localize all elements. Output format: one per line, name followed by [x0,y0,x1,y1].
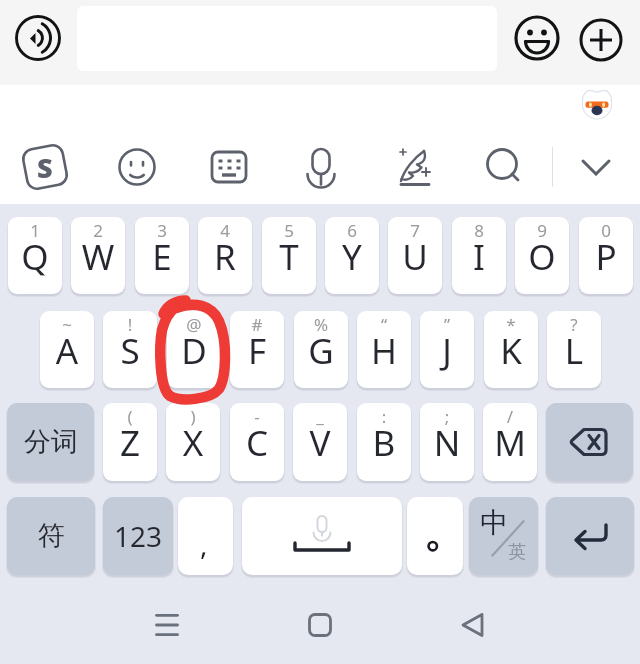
button[interactable]: Add [576,15,626,65]
button[interactable]: ? [547,311,601,388]
staticText: ~ [40,313,94,336]
staticText: 7 [388,219,442,242]
button[interactable]: Hide keyboard [567,138,625,196]
staticText: G [294,327,348,375]
staticText: : [357,405,411,428]
button[interactable]: 0 [579,217,633,294]
staticText: ? [547,313,601,336]
button[interactable]: Home [280,585,360,664]
staticText: B [357,419,411,467]
button[interactable]: Handwriting [384,138,442,196]
button[interactable]: ( [103,403,157,481]
staticText: * [484,313,538,336]
staticText: S [103,327,157,375]
staticText: ; [420,405,474,428]
staticText: H [357,327,411,375]
staticText: P [579,233,633,281]
staticText: R [198,233,252,281]
staticText: 8 [452,219,506,242]
staticText: T [262,233,316,281]
button[interactable]: Voice [292,138,350,196]
staticText: Q [8,233,62,281]
button[interactable]: 123 [103,497,173,575]
staticText: L [547,327,601,375]
button[interactable]: ) [166,403,220,481]
staticText: 9 [515,219,569,242]
button[interactable]: * [484,311,538,388]
staticText: C [230,419,284,467]
staticText: , [200,525,208,563]
button[interactable]: Emoji [512,13,562,63]
button[interactable]: : [357,403,411,481]
button[interactable]: 9 [515,217,569,294]
button[interactable]: 1 [8,217,62,294]
button[interactable]: Comma [178,497,233,575]
staticText: # [230,313,284,336]
button[interactable]: 4 [198,217,252,294]
staticText: 3 [135,219,189,242]
staticText: W [71,233,125,281]
button[interactable]: 2 [71,217,125,294]
staticText: D [167,327,221,375]
button[interactable]: Keyboard layout [200,138,258,196]
staticText: 2 [71,219,125,242]
button[interactable]: ” [420,311,474,388]
button[interactable]: ! [103,311,157,388]
staticText: I [452,233,506,281]
button[interactable]: Period [407,497,463,575]
staticText: 5 [262,219,316,242]
button[interactable]: # [230,311,284,388]
staticText: ” [420,313,474,336]
button[interactable]: Voice input [12,12,64,64]
button[interactable]: Chinese English toggle [469,497,538,575]
button[interactable]: ~ [40,311,94,388]
staticText: 英 [508,541,526,564]
button[interactable]: 符 [7,497,95,575]
button[interactable]: % [294,311,348,388]
button[interactable]: ; [420,403,474,481]
staticText: ! [103,313,157,336]
staticText: - [230,405,284,428]
staticText: 0 [579,219,633,242]
staticText: M [483,419,537,467]
button[interactable]: Space [242,497,402,575]
button[interactable]: / [483,403,537,481]
staticText: O [515,233,569,281]
staticText: 123 [114,517,163,555]
button[interactable]: - [230,403,284,481]
button[interactable]: 8 [452,217,506,294]
staticText: F [230,327,284,375]
staticText: ( [103,405,157,428]
staticText: V [293,419,347,467]
staticText: 分词 [24,425,78,459]
staticText: E [135,233,189,281]
button[interactable]: @ [167,311,221,388]
staticText: J [420,327,474,375]
staticText: “ [357,313,411,336]
staticText: / [483,405,537,428]
button[interactable]: “ [357,311,411,388]
button[interactable]: Search [475,138,533,196]
button[interactable]: 5 [262,217,316,294]
button[interactable]: _ [293,403,347,481]
staticText: K [484,327,538,375]
button[interactable]: Recents [127,585,207,664]
button[interactable]: Backspace [546,403,633,481]
staticText: _ [293,405,347,428]
button[interactable]: Back [433,585,513,664]
staticText: 中 [480,505,508,540]
button[interactable]: Emoticons [108,138,166,196]
button[interactable]: Enter [546,497,634,575]
staticText: ) [166,405,220,428]
staticText: Y [325,233,379,281]
staticText: % [294,313,348,336]
button[interactable]: 分词 [7,403,94,481]
staticText: N [420,419,474,467]
staticText: X [166,419,220,467]
button[interactable]: Sogou menu [16,138,74,196]
staticText: A [40,327,94,375]
button[interactable]: 3 [135,217,189,294]
button[interactable]: 7 [388,217,442,294]
button[interactable]: 6 [325,217,379,294]
